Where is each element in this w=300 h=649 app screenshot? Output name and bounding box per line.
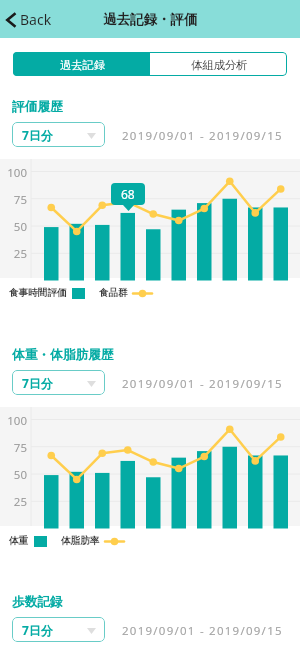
button[interactable]: 7日分: [12, 617, 105, 642]
staticText: 体組成分析: [191, 58, 248, 72]
staticText: 25: [0, 246, 27, 262]
staticText: 7日分: [22, 375, 53, 391]
staticText: 歩数記録: [12, 594, 63, 610]
staticText: 2019/09/01 - 2019/09/15: [122, 376, 283, 392]
staticText: 体重・体脂肪履歴: [12, 347, 114, 363]
button[interactable]: 7日分: [12, 370, 105, 395]
staticText: 7日分: [22, 622, 53, 638]
button[interactable]: 過去記録: [13, 52, 150, 76]
staticText: 過去記録・評価: [103, 11, 198, 28]
staticText: 75: [0, 440, 27, 456]
staticText: 7日分: [22, 127, 53, 143]
staticText: 2019/09/01 - 2019/09/15: [122, 128, 283, 144]
staticText: 50: [0, 467, 27, 483]
staticText: 25: [0, 494, 27, 510]
button[interactable]: 体組成分析: [150, 52, 287, 76]
staticText: 体脂肪率: [61, 535, 100, 547]
staticText: 食品群: [99, 287, 128, 299]
staticText: 食事時間評価: [9, 287, 67, 299]
button[interactable]: 7日分: [12, 122, 105, 147]
button[interactable]: Back: [0, 4, 62, 35]
staticText: 100: [0, 165, 27, 181]
staticText: 評価履歴: [12, 99, 63, 115]
staticText: 2019/09/01 - 2019/09/15: [122, 623, 283, 639]
staticText: 75: [0, 192, 27, 208]
staticText: 50: [0, 219, 27, 235]
staticText: Back: [20, 10, 52, 29]
staticText: 100: [0, 413, 27, 429]
staticText: 体重: [9, 535, 29, 547]
staticText: 68: [121, 186, 135, 202]
staticText: 過去記録: [60, 58, 106, 72]
